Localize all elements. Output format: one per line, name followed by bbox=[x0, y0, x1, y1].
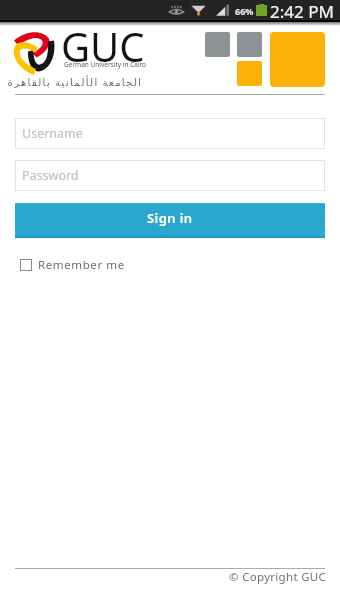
staticText: © Copyright GUC bbox=[229, 569, 327, 585]
staticText: الجامعة الألمانية بالقاهرة bbox=[7, 75, 143, 89]
button[interactable]: Sign in bbox=[15, 203, 325, 238]
staticText: Password bbox=[22, 167, 79, 184]
button[interactable]: Password bbox=[15, 160, 325, 191]
staticText: 2:42 PM bbox=[270, 0, 334, 20]
staticText: Sign in bbox=[147, 209, 193, 227]
staticText: 66% bbox=[235, 5, 254, 17]
staticText: GUC bbox=[61, 19, 145, 73]
staticText: German University in Cairo bbox=[64, 60, 147, 69]
button[interactable]: Remember me bbox=[20, 255, 125, 275]
staticText: Remember me bbox=[38, 257, 125, 273]
button[interactable]: Username bbox=[15, 118, 325, 149]
staticText: Username bbox=[22, 125, 83, 142]
